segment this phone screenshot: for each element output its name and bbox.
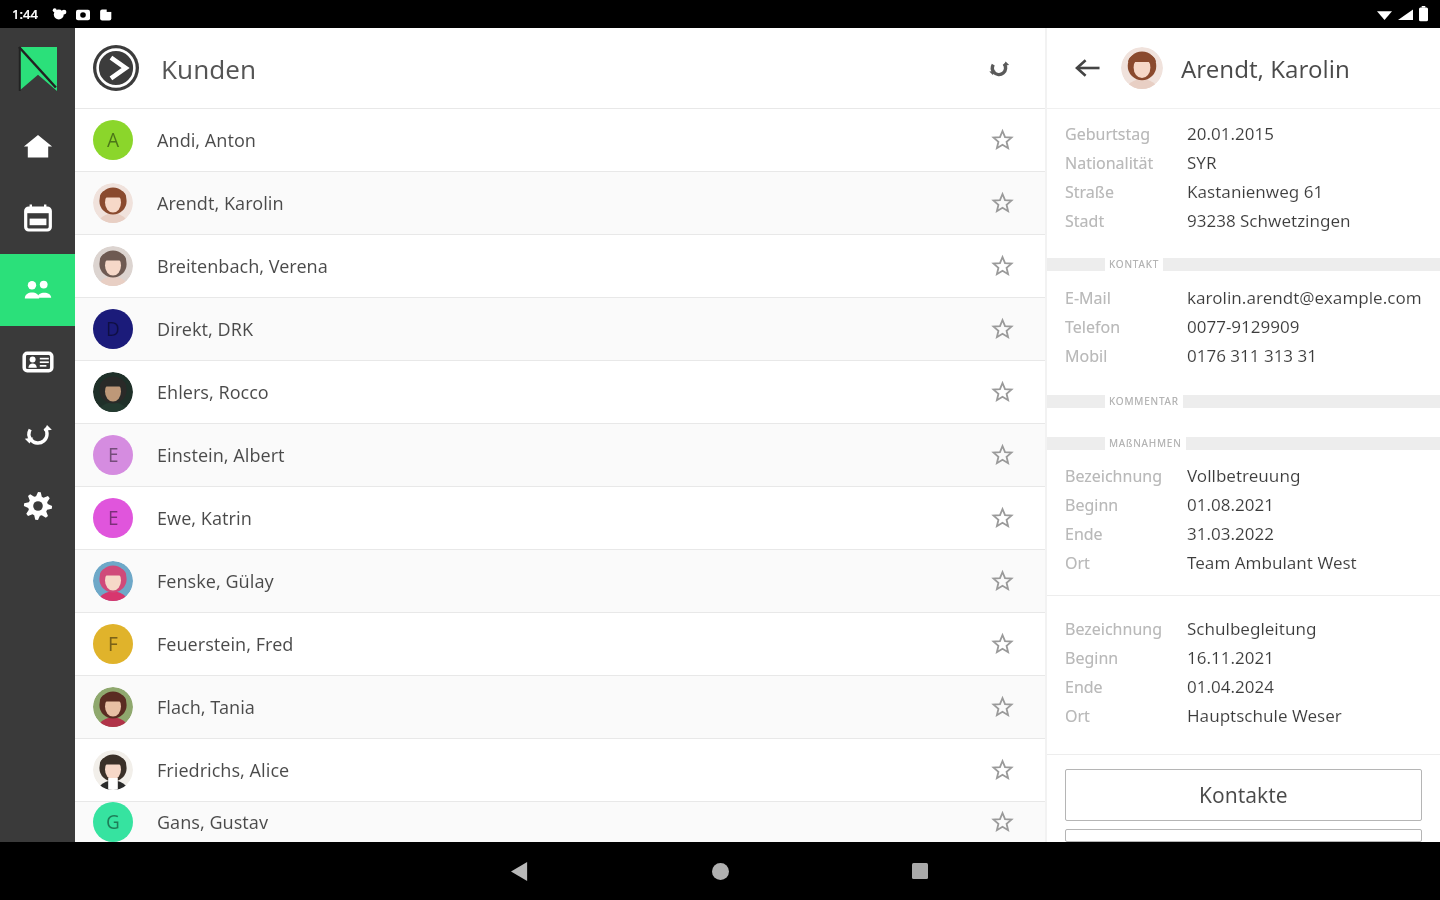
staticText: 16.11.2021 bbox=[1187, 646, 1274, 669]
staticText: Beginn bbox=[1065, 494, 1187, 516]
button[interactable]: Favorit bbox=[985, 249, 1019, 283]
staticText: Einstein, Albert bbox=[157, 443, 985, 468]
button[interactable]: Favorit bbox=[985, 805, 1019, 839]
button[interactable]: D bbox=[75, 298, 1045, 360]
staticText: Hauptschule Weser bbox=[1187, 704, 1342, 727]
staticText: Ehlers, Rocco bbox=[157, 380, 985, 405]
button[interactable]: Favorit bbox=[985, 123, 1019, 157]
button[interactable]: Favorit bbox=[985, 375, 1019, 409]
staticText: Schulbegleitung bbox=[1187, 617, 1317, 640]
staticText: Fenske, Gülay bbox=[157, 569, 985, 594]
button[interactable]: Navigation bbox=[0, 398, 75, 470]
button[interactable]: Navigation bbox=[0, 326, 75, 398]
button[interactable] bbox=[1065, 829, 1422, 842]
button[interactable]: F bbox=[75, 613, 1045, 675]
button[interactable]: Zurück bbox=[500, 851, 540, 891]
staticText: 01.08.2021 bbox=[1187, 493, 1274, 516]
staticText: Andi, Anton bbox=[157, 128, 985, 153]
staticText: SYR bbox=[1187, 151, 1217, 174]
button[interactable]: Favorit bbox=[985, 438, 1019, 472]
staticText: E bbox=[108, 505, 119, 531]
staticText: F bbox=[108, 631, 118, 657]
button[interactable]: Zurück bbox=[1069, 49, 1107, 87]
button[interactable]: Flach, Tania bbox=[75, 676, 1045, 738]
staticText: Arendt, Karolin bbox=[157, 191, 985, 216]
button[interactable]: Arendt, Karolin bbox=[75, 172, 1045, 234]
staticText: 01.04.2024 bbox=[1187, 675, 1274, 698]
button[interactable]: Navigation bbox=[0, 470, 75, 542]
staticText: Bezeichnung bbox=[1065, 465, 1187, 487]
staticText: karolin.arendt@example.com bbox=[1187, 286, 1422, 309]
button[interactable]: Ehlers, Rocco bbox=[75, 361, 1045, 423]
staticText: 0077-9129909 bbox=[1187, 315, 1300, 338]
button[interactable]: Breitenbach, Verena bbox=[75, 235, 1045, 297]
staticText: Beginn bbox=[1065, 647, 1187, 669]
staticText: Bezeichnung bbox=[1065, 618, 1187, 640]
button[interactable]: Menü öffnen bbox=[93, 45, 139, 91]
staticText: KOMMENTAR bbox=[1109, 394, 1179, 408]
staticText: Kastanienweg 61 bbox=[1187, 180, 1324, 203]
button[interactable]: Übersicht bbox=[900, 851, 940, 891]
staticText: KONTAKT bbox=[1109, 257, 1159, 271]
button[interactable]: Kunden bbox=[0, 254, 75, 326]
staticText: A bbox=[107, 127, 120, 153]
staticText: 20.01.2015 bbox=[1187, 122, 1274, 145]
button[interactable]: E bbox=[75, 424, 1045, 486]
staticText: D bbox=[106, 316, 120, 342]
button[interactable]: Favorit bbox=[985, 564, 1019, 598]
button[interactable]: Friedrichs, Alice bbox=[75, 739, 1045, 801]
staticText: Straße bbox=[1065, 181, 1187, 203]
staticText: Kontakte bbox=[1199, 781, 1288, 810]
staticText: 93238 Schwetzingen bbox=[1187, 209, 1351, 232]
staticText: Telefon bbox=[1065, 316, 1187, 338]
button[interactable]: Favorit bbox=[985, 627, 1019, 661]
button[interactable]: Favorit bbox=[985, 753, 1019, 787]
button[interactable]: Favorit bbox=[985, 186, 1019, 220]
staticText: Vollbetreuung bbox=[1187, 464, 1301, 487]
button[interactable]: Kontakte bbox=[1065, 769, 1422, 821]
staticText: Kunden bbox=[161, 51, 256, 86]
staticText: Nationalität bbox=[1065, 152, 1187, 174]
button[interactable]: Favorit bbox=[985, 501, 1019, 535]
staticText: 31.03.2022 bbox=[1187, 522, 1274, 545]
staticText: Team Ambulant West bbox=[1187, 551, 1357, 574]
staticText: MAßNAHMEN bbox=[1109, 436, 1182, 450]
button[interactable]: Fenske, Gülay bbox=[75, 550, 1045, 612]
staticText: Direkt, DRK bbox=[157, 317, 985, 342]
staticText: Ende bbox=[1065, 523, 1187, 545]
staticText: 0176 311 313 31 bbox=[1187, 344, 1317, 367]
button[interactable]: E bbox=[75, 487, 1045, 549]
staticText: G bbox=[106, 809, 120, 835]
button[interactable]: Favorit bbox=[985, 690, 1019, 724]
button[interactable]: Navigation bbox=[0, 110, 75, 182]
staticText: Geburtstag bbox=[1065, 123, 1187, 145]
staticText: E-Mail bbox=[1065, 287, 1187, 309]
staticText: Arendt, Karolin bbox=[1181, 52, 1350, 85]
staticText: Ort bbox=[1065, 552, 1187, 574]
staticText: Flach, Tania bbox=[157, 695, 985, 720]
staticText: Breitenbach, Verena bbox=[157, 254, 985, 279]
button[interactable]: G bbox=[75, 802, 1045, 842]
button[interactable]: A bbox=[75, 109, 1045, 171]
staticText: Ewe, Katrin bbox=[157, 506, 985, 531]
button[interactable]: Aktualisieren bbox=[979, 48, 1019, 88]
staticText: Gans, Gustav bbox=[157, 810, 985, 835]
staticText: Mobil bbox=[1065, 345, 1187, 367]
button[interactable]: Startbildschirm bbox=[700, 851, 740, 891]
staticText: 1:44 bbox=[12, 5, 38, 23]
staticText: E bbox=[108, 442, 119, 468]
staticText: Feuerstein, Fred bbox=[157, 632, 985, 657]
staticText: Ort bbox=[1065, 705, 1187, 727]
button[interactable]: Favorit bbox=[985, 312, 1019, 346]
button[interactable]: Navigation bbox=[0, 182, 75, 254]
staticText: Ende bbox=[1065, 676, 1187, 698]
staticText: Friedrichs, Alice bbox=[157, 758, 985, 783]
staticText: Stadt bbox=[1065, 210, 1187, 232]
